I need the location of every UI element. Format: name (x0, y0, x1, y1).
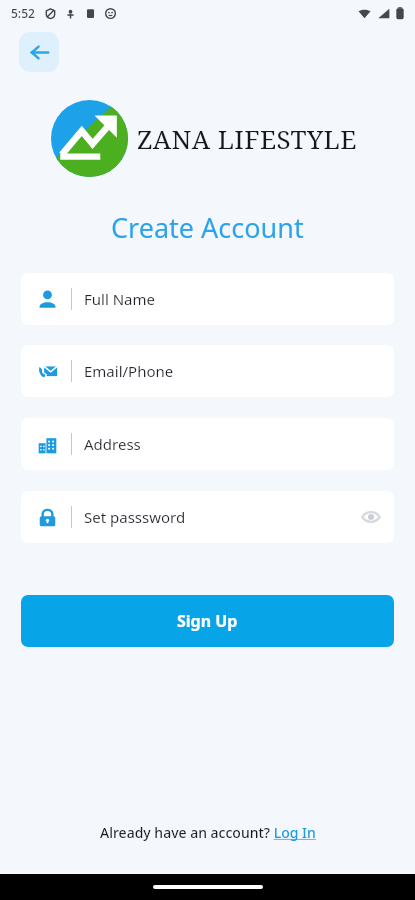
staticText: Address (84, 434, 141, 454)
button[interactable]: Sign Up (21, 595, 394, 647)
button[interactable]: Back (19, 32, 59, 72)
staticText: Create Account (111, 209, 304, 246)
staticText: Email/Phone (84, 361, 174, 381)
button[interactable]: Address (21, 418, 394, 470)
button[interactable]: Full Name (21, 273, 394, 325)
button[interactable]: Email/Phone (21, 345, 394, 397)
staticText: Full Name (84, 289, 155, 309)
button[interactable]: Set passsword (21, 491, 394, 543)
button[interactable]: Show password (353, 499, 389, 535)
staticText: Sign Up (177, 610, 238, 632)
staticText: Set passsword (84, 507, 186, 527)
staticText: 5:52 (11, 5, 35, 21)
staticText: ZANA LIFESTYLE (137, 121, 357, 156)
button[interactable]: Already have an account? Log In (94, 819, 322, 846)
